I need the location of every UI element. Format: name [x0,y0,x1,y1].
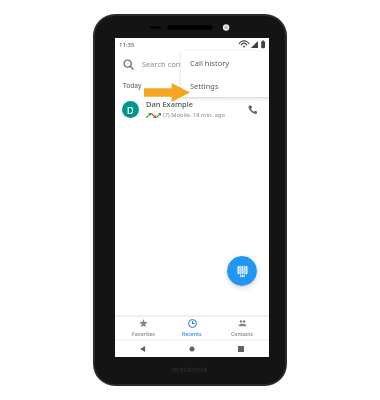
staticText: Dan Example [146,99,194,109]
staticText: (7) Mobile, 18 min. ago [163,111,225,119]
button[interactable]: Back [137,343,149,355]
button[interactable]: Recent apps [235,343,247,355]
staticText: Recents [182,330,202,337]
button[interactable]: Home [186,343,198,355]
staticText: Search contacts [142,59,198,69]
button[interactable]: Call Dan Example [242,99,262,119]
staticText: Contacts [231,330,253,337]
button[interactable]: Search [115,51,269,77]
other: Search [123,59,134,70]
button[interactable]: D [115,94,269,124]
staticText: motorola [172,365,208,375]
staticText: Today [123,81,142,90]
button[interactable]: Open dialpad [227,256,257,286]
button[interactable]: Call history [181,51,269,74]
staticText: Settings [190,81,219,91]
staticText: Call history [190,58,230,68]
button[interactable]: Settings [181,74,269,97]
staticText: D [127,104,134,116]
button[interactable]: Favorites [121,316,165,340]
button[interactable]: Recents [170,316,214,340]
staticText: 11:35 [119,41,135,49]
button[interactable]: Contacts [220,316,264,340]
staticText: Favorites [132,330,155,337]
